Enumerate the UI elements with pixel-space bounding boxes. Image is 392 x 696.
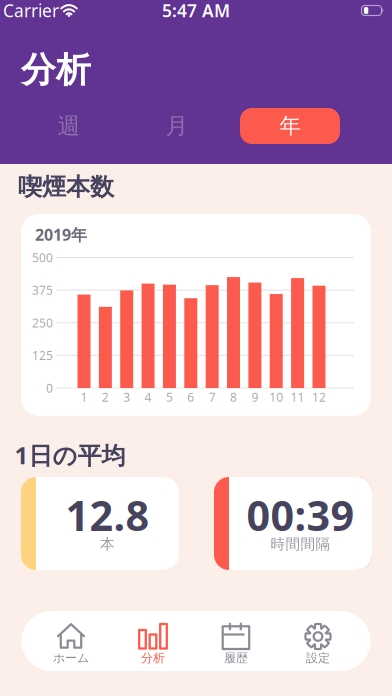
button[interactable]: 月 — [127, 108, 227, 144]
button[interactable]: 分析 — [112, 611, 194, 671]
staticText: 12.8 — [65, 488, 149, 542]
button[interactable]: 週 — [19, 108, 119, 144]
button[interactable]: 年 — [240, 108, 340, 144]
staticText: 10 — [269, 389, 283, 405]
staticText: Carrier — [3, 0, 59, 22]
staticText: 12 — [312, 389, 326, 405]
staticText: 時間間隔 — [270, 535, 330, 553]
staticText: 7 — [209, 389, 216, 405]
staticText: 00:39 — [246, 488, 354, 542]
staticText: 2019年 — [35, 224, 87, 245]
staticText: 履歴 — [224, 651, 248, 665]
staticText: 1 — [80, 389, 87, 405]
staticText: 500 — [32, 249, 53, 265]
staticText: 9 — [251, 389, 258, 405]
staticText: 250 — [32, 315, 53, 331]
staticText: 設定 — [306, 651, 330, 665]
staticText: 6 — [187, 389, 194, 405]
staticText: 125 — [32, 347, 53, 363]
staticText: 本 — [100, 535, 115, 553]
staticText: 8 — [230, 389, 237, 405]
staticText: 喫煙本数 — [18, 172, 114, 202]
button[interactable]: ホーム — [30, 611, 112, 671]
staticText: 分析 — [21, 49, 91, 91]
staticText: 1日の平均 — [14, 439, 125, 471]
staticText: 5 — [166, 389, 173, 405]
staticText: 375 — [32, 282, 53, 298]
button[interactable]: 設定 — [277, 611, 359, 671]
staticText: 0 — [46, 380, 53, 396]
staticText: 11 — [291, 389, 305, 405]
staticText: 分析 — [141, 651, 165, 665]
staticText: 週 — [57, 112, 80, 140]
staticText: ホーム — [53, 651, 89, 665]
staticText: 年 — [279, 113, 300, 139]
staticText: 5:47 AM — [162, 0, 230, 22]
staticText: 月 — [165, 112, 188, 140]
staticText: 3 — [123, 389, 130, 405]
staticText: 2 — [102, 389, 109, 405]
button[interactable]: 履歴 — [195, 611, 277, 671]
staticText: 4 — [145, 389, 152, 405]
